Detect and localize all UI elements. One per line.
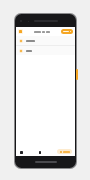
button[interactable] <box>16 46 75 55</box>
button[interactable]: Continue <box>57 149 72 154</box>
other: Side button <box>76 69 78 80</box>
button[interactable]: App logo <box>18 29 23 34</box>
button[interactable]: Gallery <box>19 150 23 154</box>
button[interactable]: Primary action <box>61 29 73 34</box>
button[interactable] <box>16 36 75 45</box>
button[interactable]: Camera <box>38 150 42 154</box>
